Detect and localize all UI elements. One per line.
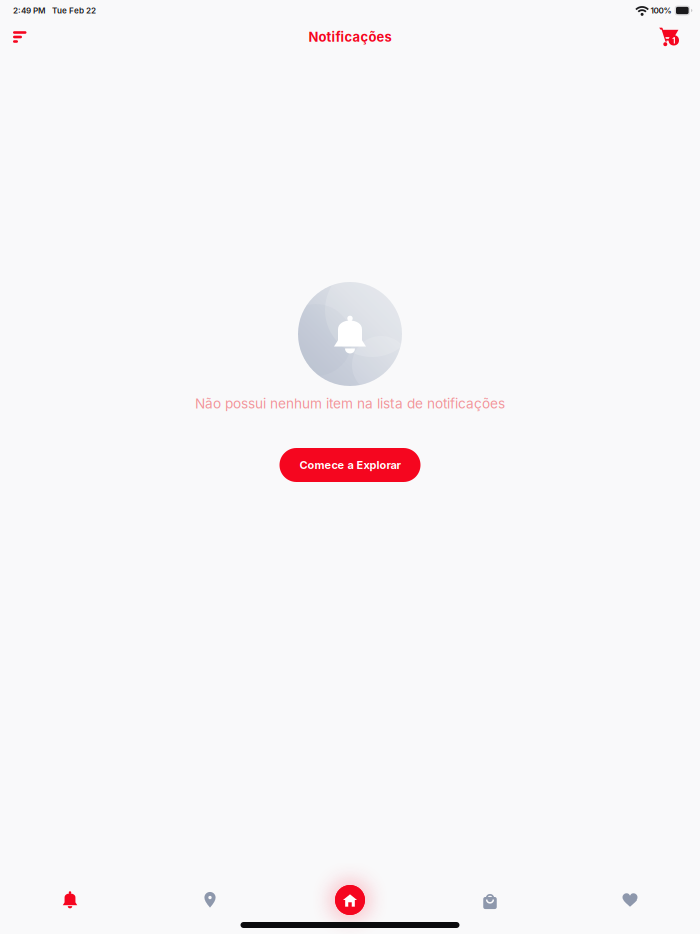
staticText: 100% bbox=[649, 6, 672, 15]
button[interactable]: Comece a Explorar bbox=[279, 448, 420, 482]
button[interactable]: Carrinho bbox=[644, 21, 700, 52]
button[interactable]: Início bbox=[315, 865, 385, 934]
button[interactable]: Notificações bbox=[0, 874, 140, 926]
staticText: Não possui nenhum item na lista de notif… bbox=[195, 395, 505, 412]
button[interactable]: Início bbox=[280, 874, 420, 926]
button[interactable]: Menu bbox=[0, 22, 42, 52]
staticText: Notificações bbox=[308, 29, 391, 45]
staticText: Tue Feb 22 bbox=[52, 6, 96, 15]
staticText: 2:49 PM bbox=[13, 6, 46, 15]
staticText: Comece a Explorar bbox=[299, 458, 400, 472]
button[interactable]: Favoritos bbox=[560, 874, 700, 926]
button[interactable]: Locais bbox=[140, 874, 280, 926]
button[interactable]: Compras bbox=[420, 874, 560, 926]
